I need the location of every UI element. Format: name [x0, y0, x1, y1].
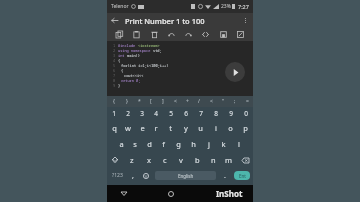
staticText: n: [211, 155, 216, 165]
button[interactable]: }: [120, 96, 133, 107]
button[interactable]: ]: [157, 96, 169, 107]
staticText: 7: [199, 109, 203, 118]
staticText: q: [112, 123, 117, 133]
button[interactable]: Paste: [130, 28, 143, 41]
button[interactable]: Edit: [234, 28, 247, 41]
staticText: return 0;: [121, 78, 141, 83]
button[interactable]: ,: [127, 168, 139, 183]
button[interactable]: v: [173, 152, 189, 168]
button[interactable]: 4: [149, 107, 163, 120]
staticText: e: [140, 123, 145, 133]
staticText: <iostream>: [138, 43, 160, 48]
button[interactable]: [: [145, 96, 157, 107]
staticText: {: [118, 58, 121, 63]
staticText: 4: [113, 58, 116, 63]
button[interactable]: n: [205, 152, 221, 168]
button[interactable]: Delete: [148, 28, 161, 41]
button[interactable]: d: [142, 136, 156, 152]
button[interactable]: j: [201, 136, 216, 152]
button[interactable]: 6: [178, 107, 193, 120]
button[interactable]: a: [114, 136, 128, 152]
staticText: ;: [234, 98, 236, 105]
staticText: }: [118, 83, 121, 88]
button[interactable]: .: [219, 168, 231, 183]
staticText: 3: [113, 53, 116, 58]
button[interactable]: g: [171, 136, 186, 152]
button[interactable]: 3: [135, 107, 149, 120]
button[interactable]: f: [156, 136, 171, 152]
button[interactable]: i: [208, 120, 223, 136]
button[interactable]: t: [163, 120, 178, 136]
button[interactable]: 5: [163, 107, 178, 120]
staticText: Telenor: [111, 3, 129, 10]
button[interactable]: 9: [223, 107, 238, 120]
button[interactable]: Shift: [107, 152, 123, 168]
staticText: 9: [113, 83, 116, 88]
button[interactable]: {: [107, 96, 120, 107]
staticText: h: [191, 139, 196, 149]
button[interactable]: +: [181, 96, 193, 107]
button[interactable]: English: [155, 171, 216, 180]
button[interactable]: Enter: [234, 171, 250, 180]
button[interactable]: *: [133, 96, 145, 107]
staticText: <: [174, 98, 177, 105]
button[interactable]: <: [169, 96, 181, 107]
button[interactable]: Emoji: [139, 168, 152, 183]
button[interactable]: Save: [217, 28, 230, 41]
button[interactable]: m: [221, 152, 237, 168]
button[interactable]: l: [231, 136, 246, 152]
button[interactable]: y: [178, 120, 193, 136]
staticText: k: [221, 139, 226, 149]
button[interactable]: Home: [162, 185, 179, 202]
button[interactable]: 2: [121, 107, 135, 120]
button[interactable]: q: [107, 120, 121, 136]
button[interactable]: ": [217, 96, 229, 107]
button[interactable]: ?123: [107, 168, 127, 183]
button[interactable]: Back: [115, 185, 132, 202]
button[interactable]: e: [135, 120, 149, 136]
staticText: s: [133, 139, 137, 149]
button[interactable]: b: [189, 152, 205, 168]
staticText: 6: [184, 109, 188, 118]
button[interactable]: More options: [238, 13, 253, 28]
button[interactable]: c: [157, 152, 173, 168]
staticText: b: [195, 155, 200, 165]
button[interactable]: 8: [208, 107, 223, 120]
button[interactable]: Undo: [165, 28, 178, 41]
button[interactable]: Copy: [113, 28, 126, 41]
button[interactable]: Run: [225, 62, 245, 82]
button[interactable]: Redo: [182, 28, 195, 41]
button[interactable]: Insert code: [199, 28, 212, 41]
staticText: }: [126, 98, 128, 105]
staticText: 8: [113, 78, 116, 83]
button[interactable]: 0: [238, 107, 253, 120]
button[interactable]: s: [128, 136, 142, 152]
button[interactable]: /: [193, 96, 205, 107]
button[interactable]: Back: [107, 13, 122, 28]
button[interactable]: 1: [107, 107, 121, 120]
staticText: c: [163, 155, 167, 165]
button[interactable]: o: [223, 120, 238, 136]
staticText: /: [198, 98, 200, 105]
button[interactable]: w: [121, 120, 135, 136]
button[interactable]: x: [140, 152, 157, 168]
button[interactable]: r: [149, 120, 163, 136]
button[interactable]: =: [241, 96, 253, 107]
staticText: l: [238, 139, 240, 149]
button[interactable]: u: [193, 120, 208, 136]
staticText: i: [215, 123, 217, 133]
staticText: j: [208, 139, 210, 149]
button[interactable]: Backspace: [237, 152, 253, 168]
button[interactable]: p: [238, 120, 253, 136]
staticText: English: [178, 173, 194, 179]
staticText: ?123: [112, 172, 123, 179]
staticText: 7:27: [238, 3, 249, 10]
staticText: w: [125, 123, 131, 133]
button[interactable]: k: [216, 136, 231, 152]
button[interactable]: 7: [193, 107, 208, 120]
staticText: r: [154, 123, 158, 133]
button[interactable]: z: [123, 152, 140, 168]
button[interactable]: ;: [229, 96, 241, 107]
button[interactable]: h: [186, 136, 201, 152]
button[interactable]: <: [205, 96, 217, 107]
